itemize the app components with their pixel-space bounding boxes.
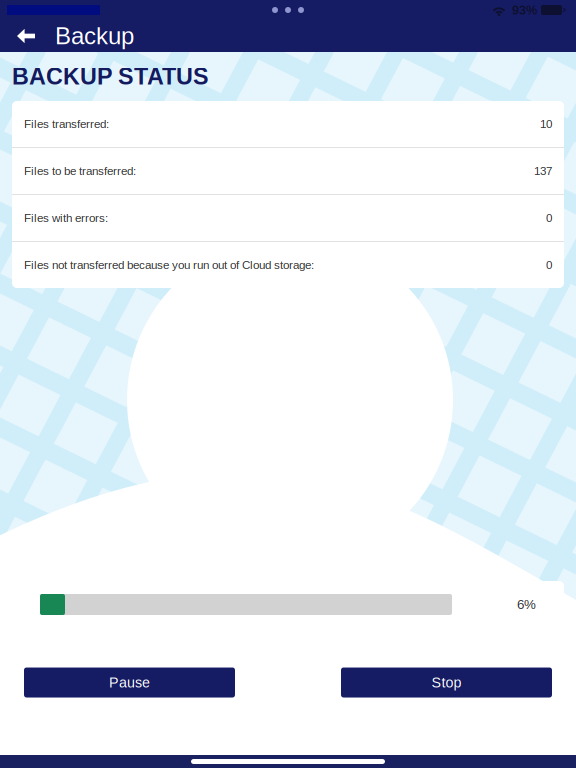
staticText: 6% bbox=[517, 597, 536, 612]
staticText: Backup bbox=[55, 23, 134, 49]
staticText: 137 bbox=[534, 164, 552, 177]
staticText: Stop bbox=[431, 674, 461, 690]
staticText: Pause bbox=[109, 674, 150, 690]
staticText: 0 bbox=[546, 258, 552, 271]
button[interactable]: Back bbox=[11, 20, 41, 52]
staticText: 0 bbox=[546, 211, 552, 224]
staticText: 93% bbox=[512, 3, 537, 17]
staticText: 10 bbox=[540, 117, 552, 130]
staticText: Files with errors: bbox=[24, 211, 108, 224]
staticText: BACKUP STATUS bbox=[12, 63, 209, 90]
button[interactable]: Stop bbox=[341, 667, 552, 697]
staticText: Files transferred: bbox=[24, 117, 109, 130]
button[interactable]: Pause bbox=[24, 667, 235, 697]
staticText: Files to be transferred: bbox=[24, 164, 136, 177]
staticText: Files not transferred because you run ou… bbox=[24, 258, 314, 271]
